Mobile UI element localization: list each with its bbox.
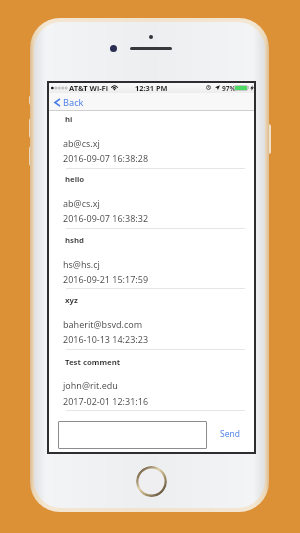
button[interactable]: xyz xyxy=(49,289,254,350)
staticText: john@rit.edu xyxy=(63,379,118,391)
staticText: xyz xyxy=(65,295,78,306)
staticText: 97% xyxy=(222,84,236,93)
staticText: 12:31 PM xyxy=(135,83,168,93)
button[interactable]: hi xyxy=(49,111,254,169)
staticText: 2016-09-07 16:38:32 xyxy=(63,212,149,224)
staticText: ab@cs.xj xyxy=(63,137,100,149)
staticText: baherit@bsvd.com xyxy=(63,318,143,330)
staticText: ab@cs.xj xyxy=(63,197,100,209)
button[interactable]: Send xyxy=(220,428,240,440)
staticText: hs@hs.cj xyxy=(63,258,100,270)
button[interactable] xyxy=(58,421,207,449)
staticText: 2016-09-21 15:17:59 xyxy=(63,273,149,285)
button[interactable]: hshd xyxy=(49,229,254,289)
button[interactable]: hello xyxy=(49,169,254,229)
staticText: hello xyxy=(65,174,85,185)
staticText: 2016-10-13 14:23:23 xyxy=(63,333,149,345)
staticText: 2017-02-01 12:31:16 xyxy=(63,395,149,407)
button[interactable]: Home xyxy=(136,466,167,497)
staticText: 2016-09-07 16:38:28 xyxy=(63,152,149,164)
button[interactable]: Back xyxy=(49,93,254,110)
staticText: AT&T Wi-Fi xyxy=(69,83,109,93)
staticText: hshd xyxy=(65,235,84,246)
staticText: Send xyxy=(220,428,240,440)
button[interactable]: Test comment xyxy=(49,350,254,411)
staticText: Back xyxy=(63,96,84,109)
staticText: hi xyxy=(65,114,73,125)
staticText: Test comment xyxy=(65,357,121,368)
